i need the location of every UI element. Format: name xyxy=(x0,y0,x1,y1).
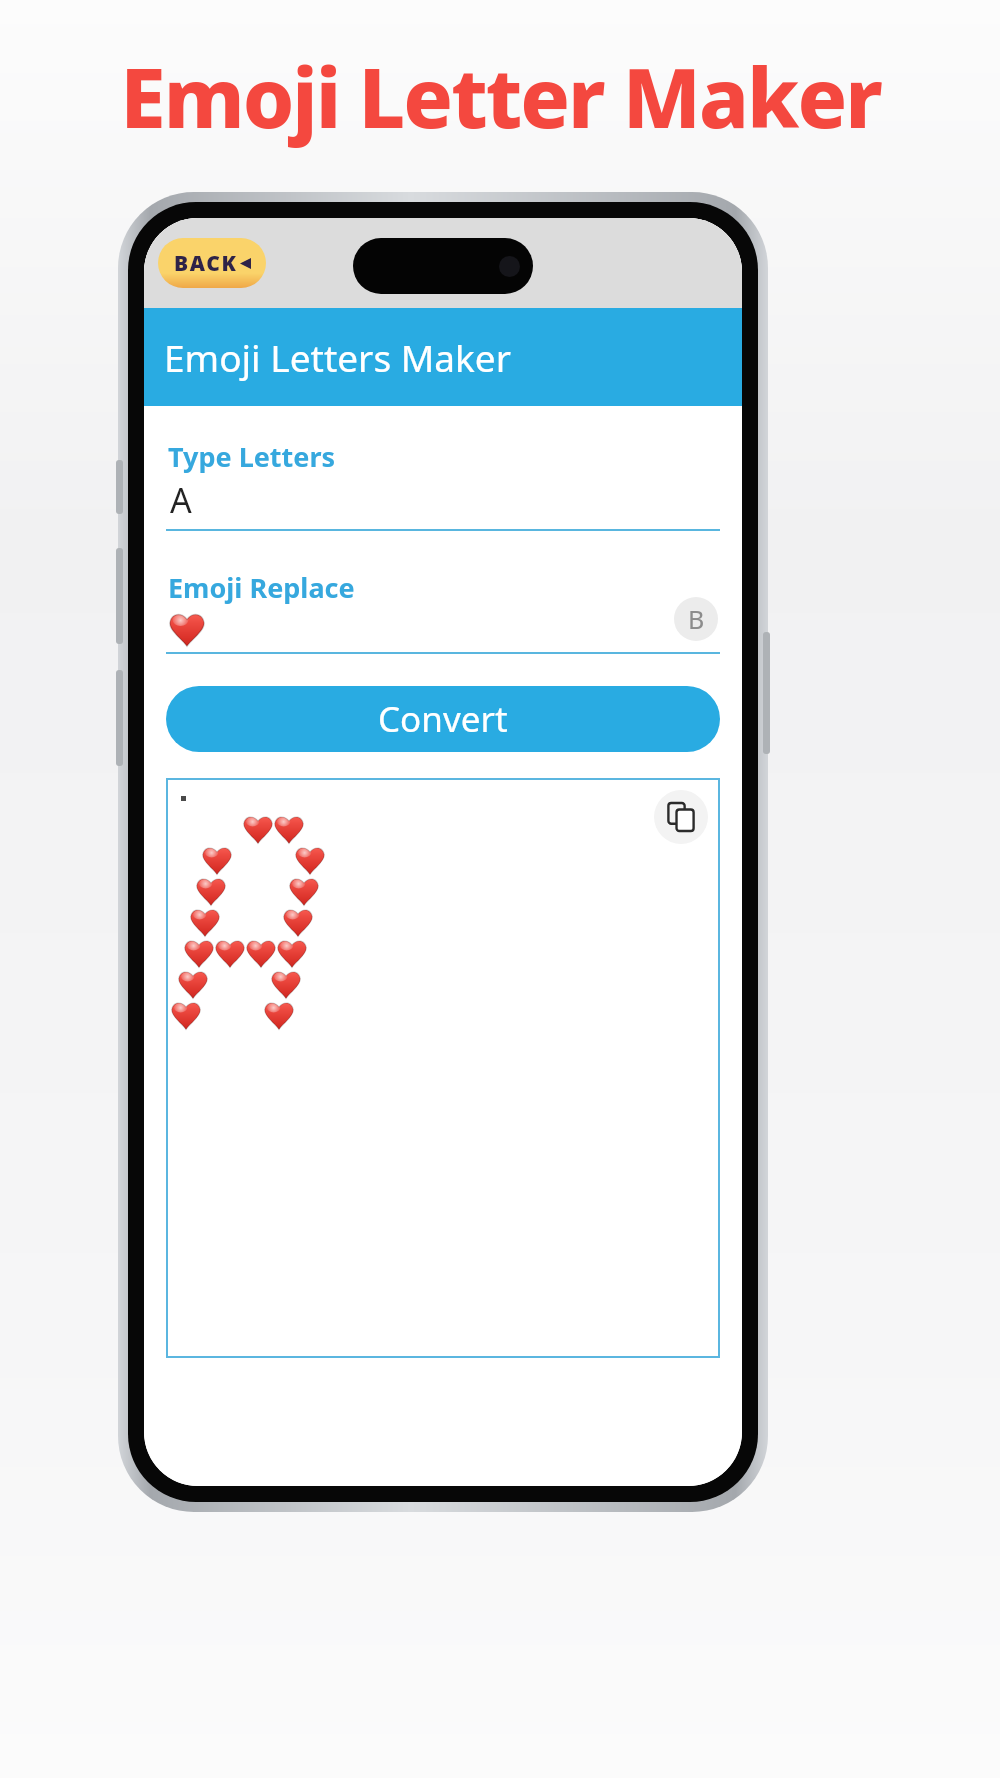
button[interactable]: Convert xyxy=(166,686,720,752)
button[interactable]: BACK xyxy=(158,238,266,288)
staticText: BACK xyxy=(174,249,238,278)
staticText: Emoji Letters Maker xyxy=(164,332,511,382)
staticText: Emoji Letter Maker xyxy=(120,40,881,152)
button[interactable]: A xyxy=(166,477,720,531)
staticText: Convert xyxy=(378,695,508,743)
button[interactable]: Copy xyxy=(654,790,708,844)
staticText: A xyxy=(170,477,192,523)
staticText: B xyxy=(688,602,705,636)
button[interactable]: Emoji picker xyxy=(166,606,720,654)
staticText: Type Letters xyxy=(168,438,336,475)
button[interactable]: Emoji picker xyxy=(674,597,718,641)
staticText: Emoji Replace xyxy=(168,569,355,606)
